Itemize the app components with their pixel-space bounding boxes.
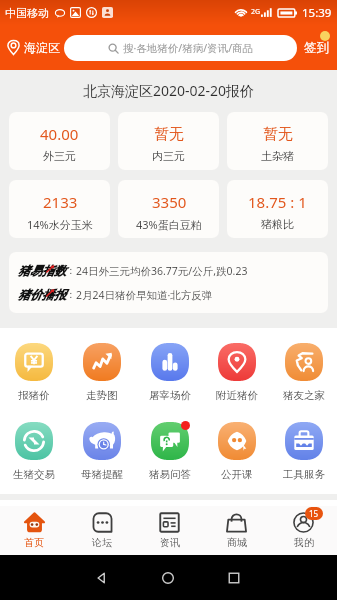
button[interactable]: 商城 [203, 506, 270, 555]
staticText: 首页 [24, 536, 44, 549]
button[interactable]: 母猪提醒 [68, 422, 136, 481]
staticText: 43%蛋白豆粕 [136, 217, 202, 232]
staticText: 2月24日猪价早知道·北方反弹 [76, 288, 213, 302]
button[interactable]: 公开课 [203, 422, 270, 481]
staticText: ： [66, 288, 76, 301]
staticText: 15 [309, 508, 319, 519]
staticText: 生猪交易 [13, 468, 55, 481]
staticText: 中国移动 [5, 6, 49, 20]
staticText: ： [66, 264, 76, 277]
button[interactable]: 报猪价 [0, 343, 68, 402]
staticText: 暂无 [154, 125, 184, 144]
button[interactable]: 屠宰场价 [136, 343, 203, 402]
staticText: 猪价播报 [18, 287, 66, 302]
staticText: 北京海淀区2020-02-20报价 [83, 81, 255, 100]
button[interactable]: 猪易指数 [9, 252, 328, 313]
staticText: 3350 [152, 192, 187, 212]
button[interactable]: Recent apps [227, 571, 241, 585]
staticText: 签到 [304, 40, 329, 56]
staticText: 猪友之家 [283, 389, 325, 402]
button[interactable]: Back [95, 571, 109, 585]
button[interactable]: 猪友之家 [270, 343, 337, 402]
button[interactable]: 附近猪价 [203, 343, 270, 402]
staticText: 14%水分玉米 [27, 217, 93, 232]
button[interactable]: 生猪交易 [0, 422, 68, 481]
button[interactable]: 3350 [118, 180, 219, 238]
button[interactable]: 猪易问答 [136, 422, 203, 481]
staticText: 资讯 [160, 536, 180, 549]
button[interactable]: 海淀区 [0, 32, 64, 63]
staticText: 外三元 [43, 149, 76, 163]
staticText: 24日外三元均价36.77元/公斤,跌0.23 [76, 264, 248, 278]
button[interactable]: 工具服务 [270, 422, 337, 481]
staticText: 猪粮比 [261, 217, 294, 231]
staticText: 18.75 : 1 [248, 192, 307, 212]
staticText: 猪易问答 [149, 468, 191, 481]
staticText: 暂无 [263, 125, 293, 144]
button[interactable]: 首页 [0, 506, 68, 555]
staticText: 40.00 [40, 124, 79, 144]
staticText: 2133 [43, 192, 78, 212]
button[interactable]: 暂无 [227, 112, 328, 170]
button[interactable]: 18.75 : 1 [227, 180, 328, 238]
button[interactable]: 搜·各地猪价/猪病/资讯/商品 [64, 35, 297, 61]
staticText: 2G [251, 7, 261, 17]
staticText: 报猪价 [18, 389, 50, 402]
staticText: 内三元 [152, 149, 185, 163]
staticText: 海淀区 [24, 40, 60, 55]
staticText: 论坛 [92, 536, 112, 549]
button[interactable]: 论坛 [68, 506, 136, 555]
staticText: 走势图 [86, 389, 118, 402]
button[interactable]: 暂无 [118, 112, 219, 170]
button[interactable]: 40.00 [9, 112, 110, 170]
staticText: 商城 [227, 536, 247, 549]
button[interactable]: 15 [270, 506, 337, 555]
staticText: 附近猪价 [216, 389, 258, 402]
staticText: 我的 [294, 536, 314, 549]
staticText: 15:39 [302, 5, 332, 21]
staticText: 工具服务 [283, 468, 325, 481]
button[interactable]: 走势图 [68, 343, 136, 402]
staticText: 猪易指数 [18, 263, 66, 278]
staticText: 搜·各地猪价/猪病/资讯/商品 [123, 41, 254, 55]
button[interactable]: 2133 [9, 180, 110, 238]
staticText: 屠宰场价 [149, 389, 191, 402]
staticText: 土杂猪 [261, 149, 294, 163]
button[interactable]: Home [161, 571, 175, 585]
staticText: 母猪提醒 [81, 468, 123, 481]
button[interactable]: 签到 [297, 32, 337, 64]
staticText: 公开课 [221, 468, 253, 481]
button[interactable]: 资讯 [136, 506, 203, 555]
